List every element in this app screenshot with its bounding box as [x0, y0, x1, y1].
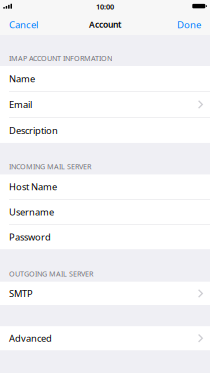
button[interactable]: Host Name [0, 174, 210, 199]
button[interactable]: SMTP [0, 282, 210, 305]
staticText: Host Name [9, 180, 57, 193]
staticText: Cancel [9, 18, 38, 31]
staticText: IMAP ACCOUNT INFORMATION [9, 53, 112, 63]
button[interactable]: Name [0, 66, 210, 91]
staticText: Password [9, 231, 51, 243]
button[interactable]: Username [0, 199, 210, 224]
button[interactable]: Done [169, 14, 210, 35]
staticText: Done [177, 18, 201, 31]
staticText: Email [9, 98, 32, 111]
staticText: Account [89, 19, 121, 30]
staticText: OUTGOING MAIL SERVER [9, 269, 93, 279]
button[interactable]: Advanced [0, 326, 210, 350]
staticText: 10:00 [96, 2, 114, 12]
navigationBar: Account [0, 14, 210, 35]
staticText: Description [9, 124, 58, 137]
staticText: Username [9, 205, 54, 218]
staticText: Name [9, 72, 35, 85]
staticText: SMTP [9, 287, 33, 300]
button[interactable]: Cancel [0, 14, 46, 35]
staticText: INCOMING MAIL SERVER [9, 162, 91, 171]
staticText: Advanced [9, 332, 52, 345]
button[interactable]: Email [0, 92, 210, 117]
button[interactable]: Description [0, 118, 210, 143]
button[interactable]: Password [0, 225, 210, 249]
